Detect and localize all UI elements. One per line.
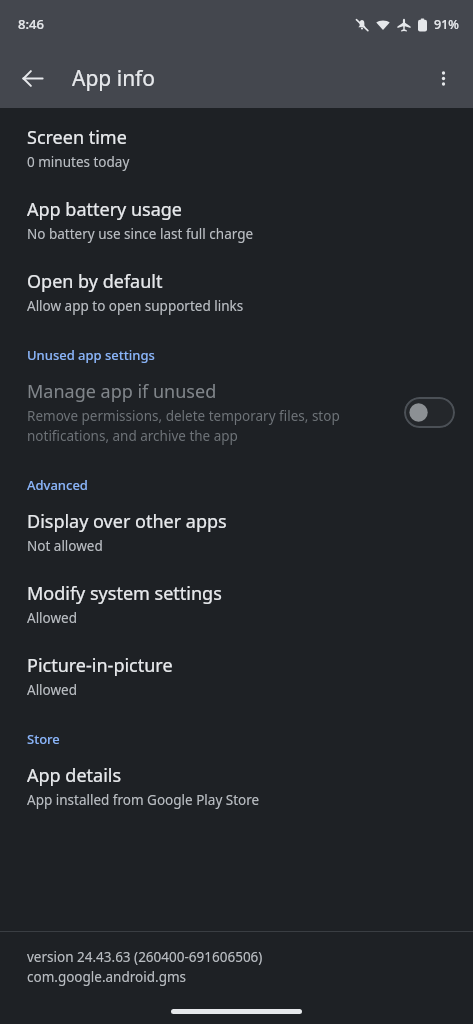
staticText: Modify system settings [27, 581, 222, 606]
staticText: 0 minutes today [27, 153, 130, 171]
staticText: No battery use since last full charge [27, 225, 254, 243]
staticText: Allowed [27, 681, 78, 699]
button[interactable]: Picture-in-picture [0, 641, 473, 713]
staticText: App details [27, 763, 122, 788]
button[interactable]: App details [0, 751, 473, 823]
button[interactable]: Manage app if unused, off [404, 397, 455, 428]
staticText: Open by default [27, 269, 163, 294]
button[interactable]: Display over other apps [0, 497, 473, 569]
staticText: App battery usage [27, 197, 182, 222]
staticText: App info [72, 64, 156, 93]
staticText: Screen time [27, 125, 127, 150]
button[interactable]: Open by default [0, 257, 473, 329]
staticText: Remove permissions, delete temporary fil… [27, 407, 340, 445]
button[interactable]: App battery usage [0, 185, 473, 257]
staticText: Picture-in-picture [27, 653, 173, 678]
staticText: Not allowed [27, 537, 103, 555]
staticText: version 24.43.63 (260400-691606506) [27, 948, 263, 966]
staticText: Manage app if unused [27, 379, 217, 404]
staticText: 8:46 [18, 15, 44, 33]
button[interactable]: Screen time [0, 113, 473, 185]
staticText: Unused app settings [27, 346, 155, 364]
staticText: App installed from Google Play Store [27, 791, 260, 809]
button[interactable]: Manage app if unused [0, 367, 473, 459]
staticText: 91% [434, 16, 459, 33]
staticText: Store [27, 730, 60, 748]
staticText: Allowed [27, 609, 78, 627]
staticText: Advanced [27, 476, 88, 494]
button[interactable]: More options [419, 54, 467, 102]
staticText: Allow app to open supported links [27, 297, 244, 315]
button[interactable]: Modify system settings [0, 569, 473, 641]
button[interactable]: Back [8, 54, 56, 102]
staticText: Display over other apps [27, 509, 227, 534]
staticText: com.google.android.gms [27, 968, 187, 986]
